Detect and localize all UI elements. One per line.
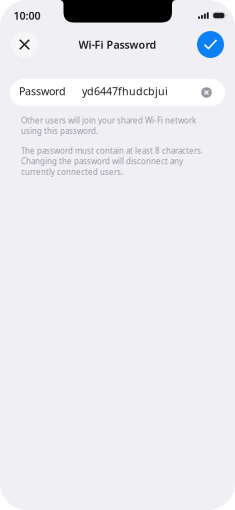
button[interactable]: Cancel <box>11 31 38 58</box>
staticText: yd6447fhudcbjui <box>82 84 168 98</box>
button[interactable]: Clear text <box>200 86 213 99</box>
button[interactable]: Done <box>197 31 224 58</box>
staticText: The password must contain at least 8 cha… <box>21 145 203 177</box>
staticText: Wi-Fi Password <box>78 37 156 52</box>
staticText: Other users will join your shared Wi-Fi … <box>21 115 196 136</box>
staticText: 10:00 <box>13 8 40 23</box>
staticText: Password <box>19 84 66 98</box>
